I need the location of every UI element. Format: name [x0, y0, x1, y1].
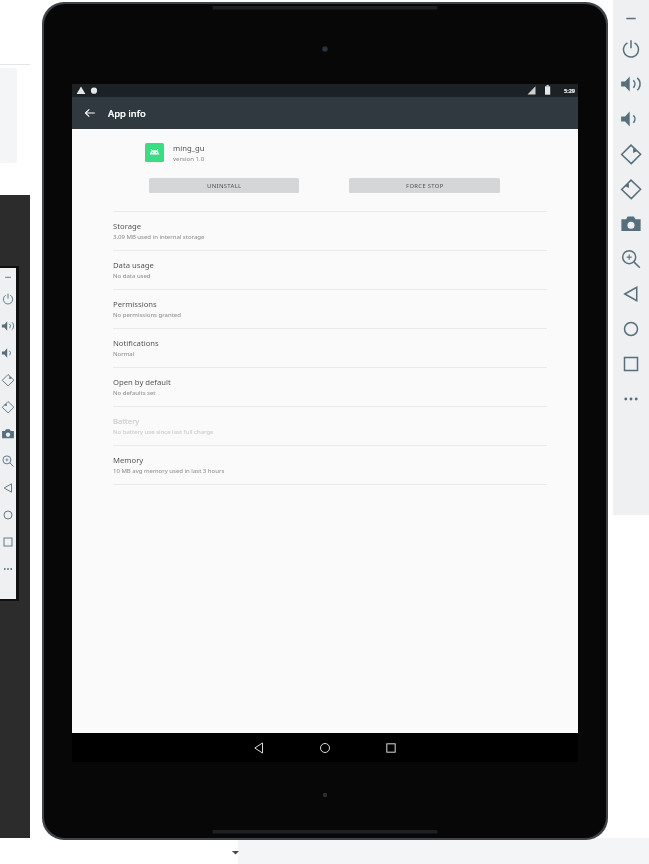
button[interactable]: Notifications [72, 329, 578, 368]
button[interactable]: Back [618, 281, 644, 307]
button[interactable]: Minimize [0, 269, 16, 285]
staticText: No battery use since last full charge [113, 428, 214, 436]
button[interactable]: Data usage [72, 251, 578, 290]
button[interactable]: Storage [72, 212, 578, 251]
staticText: No defaults set [113, 389, 156, 397]
button[interactable]: More [0, 561, 16, 577]
button[interactable]: Take screenshot [0, 426, 16, 442]
staticText: 3.09 MB used in internal storage [113, 233, 205, 241]
button[interactable]: Back [81, 104, 99, 122]
button[interactable]: Volume down [618, 106, 644, 132]
button[interactable]: Rotate right [0, 399, 16, 415]
staticText: FORCE STOP [406, 182, 444, 190]
button[interactable]: Volume down [0, 345, 16, 361]
staticText: Storage [113, 221, 142, 231]
button[interactable]: Overview [618, 351, 644, 377]
button[interactable]: Take screenshot [618, 211, 644, 237]
button[interactable]: UNINSTALL [149, 178, 299, 193]
button[interactable]: Rotate right [618, 176, 644, 202]
staticText: UNINSTALL [207, 182, 242, 190]
button[interactable]: Power [0, 291, 16, 307]
staticText: version 1.0 [173, 154, 205, 162]
button[interactable]: More [618, 386, 644, 412]
button[interactable]: FORCE STOP [349, 178, 500, 193]
button[interactable]: Home [314, 737, 336, 759]
button[interactable]: Permissions [72, 290, 578, 329]
staticText: Data usage [113, 260, 154, 270]
staticText: App info [108, 107, 146, 120]
button[interactable]: Rotate left [618, 141, 644, 167]
staticText: Memory [113, 455, 144, 465]
button[interactable]: Open by default [72, 368, 578, 407]
staticText: ming_gu [173, 143, 205, 153]
button[interactable]: Back [0, 480, 16, 496]
staticText: Notifications [113, 338, 159, 348]
button[interactable]: Power [618, 36, 644, 62]
staticText: No permissions granted [113, 311, 181, 319]
button[interactable]: Volume up [618, 71, 644, 97]
button[interactable]: Volume up [0, 318, 16, 334]
button[interactable]: Battery [72, 407, 578, 446]
button[interactable]: Home [618, 316, 644, 342]
button[interactable]: Minimize [618, 5, 644, 31]
button[interactable]: Zoom [618, 246, 644, 272]
staticText: No data used [113, 272, 151, 280]
staticText: Permissions [113, 299, 157, 309]
staticText: 5:29 [564, 87, 575, 94]
staticText: Normal [113, 350, 135, 358]
staticText: 10 MB avg memory used in last 3 hours [113, 467, 225, 475]
button[interactable]: Back [248, 737, 270, 759]
button[interactable]: Rotate left [0, 372, 16, 388]
button[interactable]: Zoom [0, 453, 16, 469]
button[interactable]: Overview [380, 737, 402, 759]
button[interactable]: Home [0, 507, 16, 523]
button[interactable]: Expand [228, 845, 242, 859]
button[interactable]: Overview [0, 534, 16, 550]
button[interactable]: Memory [72, 446, 578, 485]
staticText: Open by default [113, 377, 171, 387]
staticText: Battery [113, 416, 140, 426]
